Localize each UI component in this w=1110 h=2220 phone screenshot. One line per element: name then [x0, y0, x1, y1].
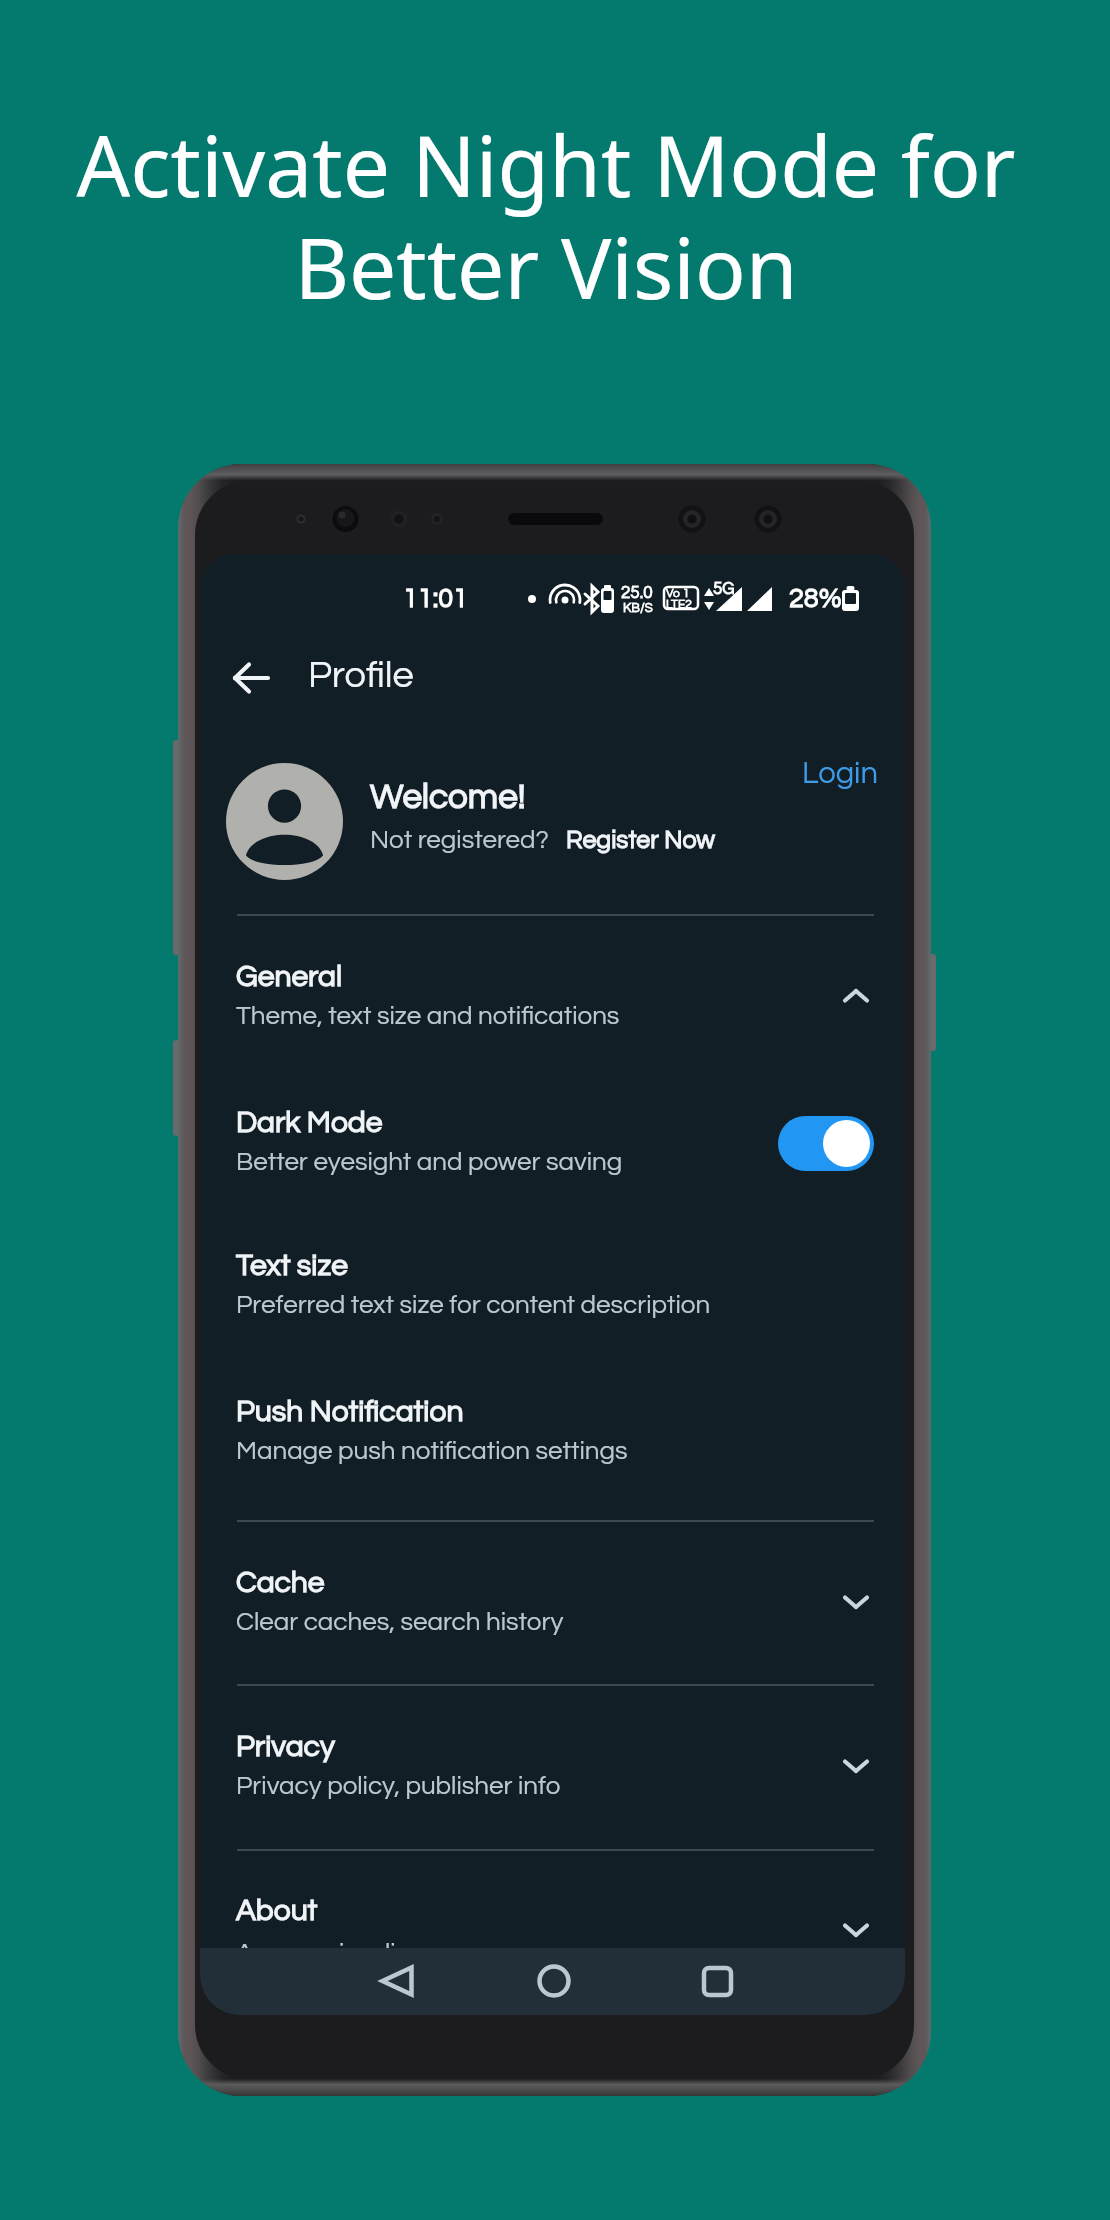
- staticText: Privacy policy, publisher info: [236, 1773, 561, 1800]
- staticText: Login: [802, 758, 879, 790]
- staticText: Cache: [236, 1567, 325, 1598]
- button[interactable]: Home: [521, 1948, 587, 2014]
- button[interactable]: Text size: [236, 1250, 869, 1319]
- button[interactable]: Cache: [236, 1567, 869, 1636]
- staticText: Profile: [308, 656, 414, 695]
- staticText: Welcome!: [370, 779, 526, 815]
- button[interactable]: Login: [794, 750, 887, 798]
- staticText: KB/S: [623, 601, 653, 614]
- button[interactable]: Push Notification: [236, 1396, 869, 1465]
- staticText: 25.0: [621, 584, 653, 602]
- staticText: 11:01: [403, 585, 468, 613]
- button[interactable]: Profile picture: [226, 763, 343, 880]
- staticText: About: [236, 1895, 318, 1926]
- button[interactable]: Recent apps: [684, 1948, 750, 2014]
- button[interactable]: Expand: [834, 1744, 878, 1788]
- staticText: Activate Night Mode for Better Vision: [0, 107, 1101, 324]
- staticText: Dark Mode: [236, 1107, 383, 1138]
- staticText: General: [236, 961, 343, 992]
- staticText: Privacy: [236, 1731, 335, 1762]
- button[interactable]: Back: [364, 1948, 430, 2014]
- button[interactable]: About: [236, 1895, 869, 1967]
- staticText: Register Now: [566, 827, 716, 853]
- staticText: Text size: [236, 1250, 348, 1281]
- staticText: Theme, text size and notifications: [236, 1003, 620, 1030]
- staticText: Clear caches, search history: [236, 1609, 564, 1636]
- button[interactable]: Back: [223, 646, 287, 710]
- button[interactable]: Privacy: [236, 1731, 869, 1800]
- staticText: 28%: [789, 585, 842, 613]
- button[interactable]: General: [236, 961, 869, 1030]
- staticText: LTE2: [666, 598, 692, 610]
- button[interactable]: Register Now: [566, 827, 716, 853]
- button[interactable]: Expand: [834, 1908, 878, 1952]
- button[interactable]: Dark Mode: [236, 1107, 869, 1176]
- button[interactable]: Dark Mode toggle, on: [778, 1116, 874, 1171]
- staticText: Vo 1: [666, 587, 690, 599]
- staticText: 5G: [713, 580, 735, 598]
- staticText: App version, licenses: [236, 1940, 479, 1967]
- staticText: Preferred text size for content descript…: [236, 1292, 711, 1319]
- staticText: Manage push notification settings: [236, 1438, 628, 1465]
- staticText: Better eyesight and power saving: [236, 1149, 623, 1176]
- button[interactable]: Collapse: [834, 974, 878, 1018]
- button[interactable]: Expand: [834, 1580, 878, 1624]
- staticText: Push Notification: [236, 1396, 464, 1427]
- staticText: Not registered?: [370, 827, 549, 854]
